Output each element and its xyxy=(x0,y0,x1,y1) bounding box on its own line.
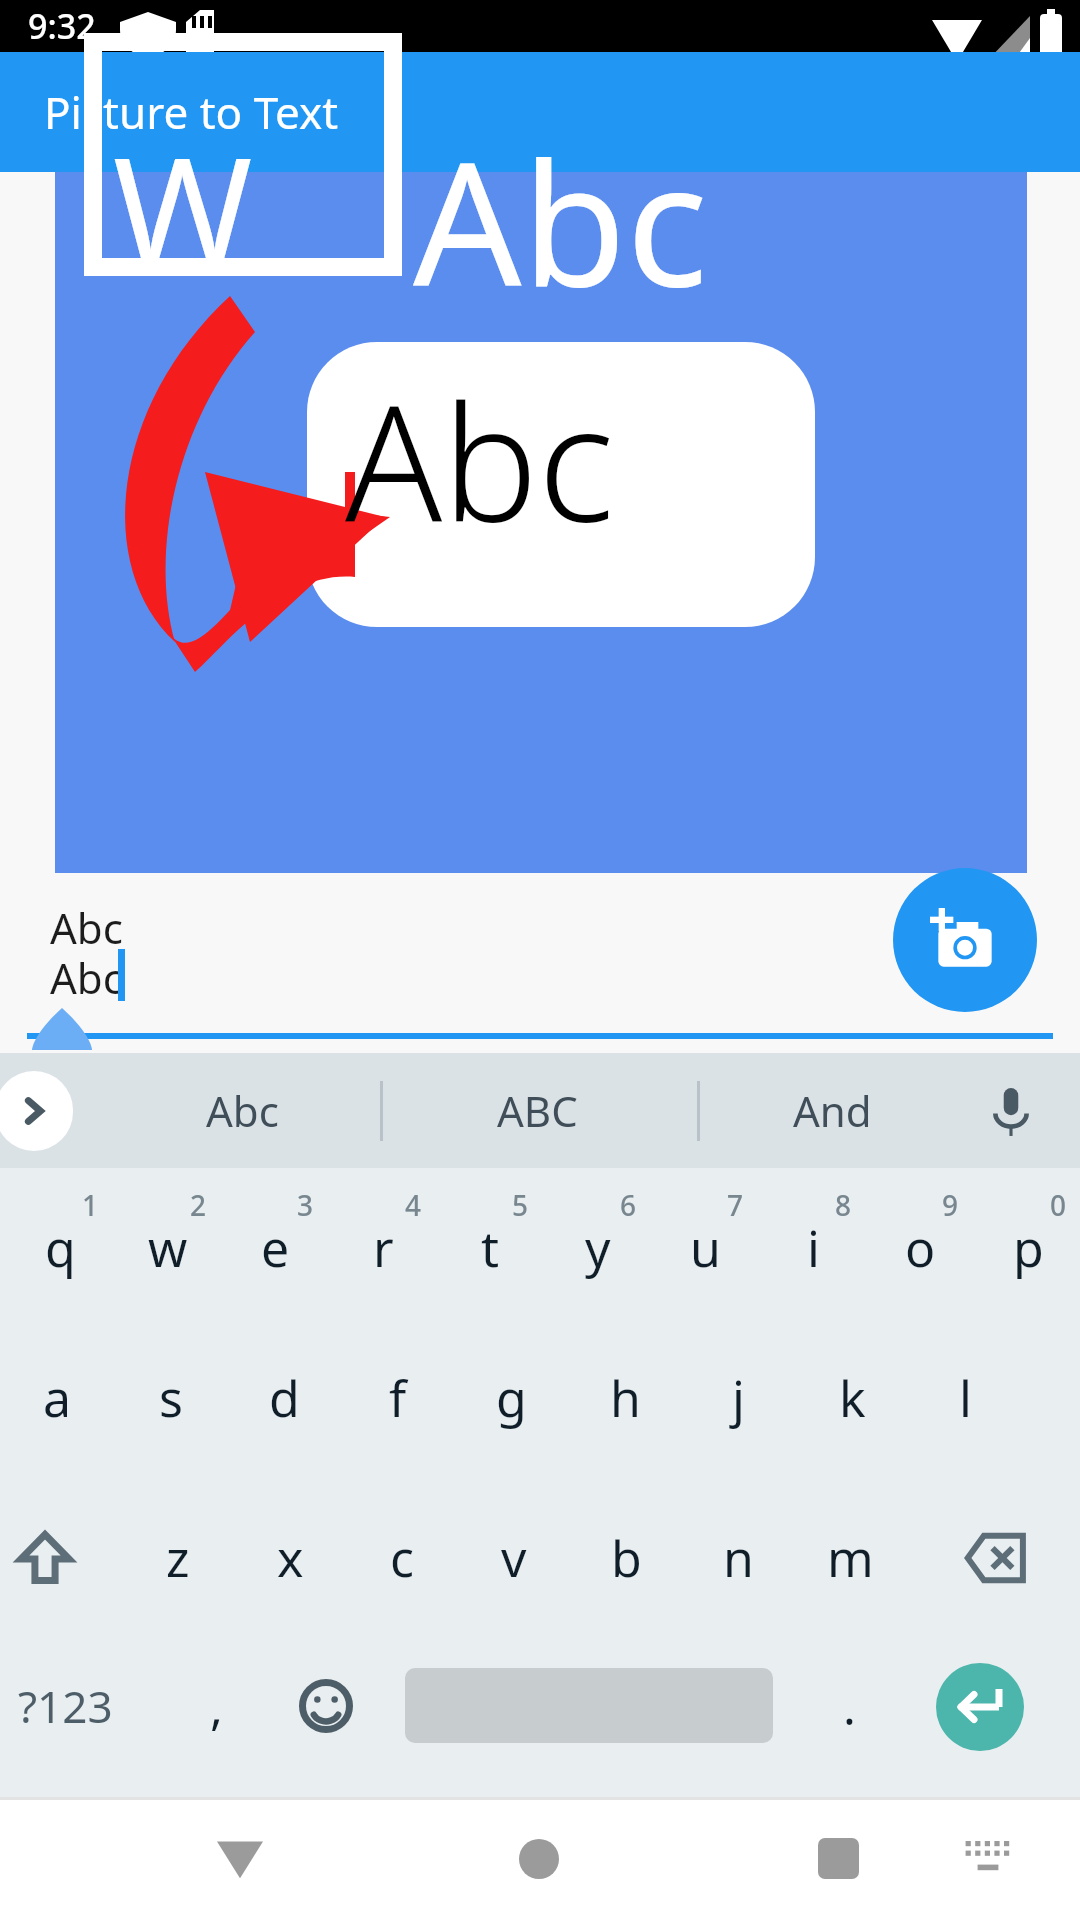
button[interactable]: Shift xyxy=(0,1498,90,1618)
button[interactable]: Recents xyxy=(778,1797,898,1920)
button[interactable]: Home xyxy=(479,1797,599,1920)
staticText: q xyxy=(45,1214,76,1282)
button[interactable]: o xyxy=(874,1202,966,1294)
button[interactable]: c xyxy=(356,1512,448,1604)
button[interactable]: u xyxy=(659,1202,751,1294)
staticText: Abc xyxy=(50,899,123,956)
button[interactable]: Enter xyxy=(936,1663,1024,1751)
staticText: 1 xyxy=(82,1186,99,1224)
staticText: n xyxy=(723,1524,754,1592)
button[interactable]: z xyxy=(132,1512,224,1604)
staticText: j xyxy=(732,1364,745,1432)
button[interactable]: y xyxy=(552,1202,644,1294)
staticText: Abc xyxy=(413,104,708,336)
button[interactable]: ?123 xyxy=(0,1646,130,1766)
staticText: l xyxy=(959,1364,972,1432)
button[interactable]: Voice input xyxy=(975,1075,1047,1147)
button[interactable]: Add a photo xyxy=(893,868,1037,1012)
button[interactable]: m xyxy=(804,1512,896,1604)
staticText: 0 xyxy=(1050,1186,1067,1224)
button[interactable]: More suggestions xyxy=(0,1071,73,1151)
staticText: e xyxy=(261,1214,290,1282)
staticText: o xyxy=(905,1214,936,1282)
button[interactable]: Abc xyxy=(55,172,1027,873)
button[interactable]: l xyxy=(919,1352,1011,1444)
button[interactable]: ABC xyxy=(385,1053,690,1168)
button[interactable]: , xyxy=(170,1660,262,1752)
staticText: v xyxy=(501,1524,527,1592)
staticText: z xyxy=(166,1524,190,1592)
button[interactable]: Abc xyxy=(110,1053,375,1168)
button[interactable]: w xyxy=(122,1202,214,1294)
staticText: t xyxy=(481,1214,500,1282)
button[interactable]: k xyxy=(806,1352,898,1444)
staticText: b xyxy=(611,1524,642,1592)
staticText: p xyxy=(1013,1214,1044,1282)
staticText: a xyxy=(43,1364,72,1432)
button[interactable]: p xyxy=(982,1202,1074,1294)
staticText: Abc xyxy=(50,949,123,1006)
button[interactable]: t xyxy=(444,1202,536,1294)
staticText: c xyxy=(390,1524,414,1592)
button[interactable]: Switch keyboard xyxy=(938,1797,1038,1920)
button[interactable]: b xyxy=(580,1512,672,1604)
staticText: s xyxy=(159,1364,183,1432)
button[interactable]: i xyxy=(767,1202,859,1294)
staticText: And xyxy=(793,1082,872,1139)
staticText: 5 xyxy=(512,1186,529,1224)
staticText: f xyxy=(389,1364,407,1432)
staticText: ?123 xyxy=(18,1676,113,1736)
staticText: h xyxy=(610,1364,641,1432)
staticText: d xyxy=(269,1364,300,1432)
button[interactable]: s xyxy=(125,1352,217,1444)
button[interactable]: f xyxy=(352,1352,444,1444)
staticText: . xyxy=(843,1674,856,1739)
staticText: 9:32 xyxy=(28,3,96,49)
staticText: Abc xyxy=(206,1082,279,1139)
button[interactable]: d xyxy=(238,1352,330,1444)
staticText: g xyxy=(496,1364,527,1432)
staticText: y xyxy=(585,1214,611,1282)
staticText: W xyxy=(113,106,253,310)
button[interactable]: r xyxy=(337,1202,429,1294)
staticText: ABC xyxy=(497,1082,578,1139)
button[interactable]: x xyxy=(244,1512,336,1604)
staticText: 7 xyxy=(727,1186,744,1224)
button[interactable]: . xyxy=(803,1660,895,1752)
button[interactable]: e xyxy=(229,1202,321,1294)
button[interactable]: v xyxy=(468,1512,560,1604)
staticText: u xyxy=(690,1214,721,1282)
staticText: 8 xyxy=(835,1186,852,1224)
button[interactable]: Emoji xyxy=(280,1646,372,1766)
button[interactable]: n xyxy=(692,1512,784,1604)
button[interactable]: Back xyxy=(180,1797,300,1920)
button[interactable]: And xyxy=(700,1053,965,1168)
button[interactable]: h xyxy=(579,1352,671,1444)
staticText: 6 xyxy=(620,1186,637,1224)
button[interactable]: g xyxy=(465,1352,557,1444)
staticText: Picture to Text xyxy=(44,82,339,142)
staticText: w xyxy=(148,1214,188,1282)
staticText: i xyxy=(807,1214,820,1282)
button[interactable]: q xyxy=(14,1202,106,1294)
staticText: Abc xyxy=(345,350,615,568)
staticText: 2 xyxy=(190,1186,207,1224)
staticText: m xyxy=(827,1524,874,1592)
staticText: 4 xyxy=(405,1186,422,1224)
button[interactable]: j xyxy=(692,1352,784,1444)
staticText: k xyxy=(839,1364,866,1432)
button[interactable]: Abc xyxy=(0,873,1080,1053)
button[interactable]: a xyxy=(11,1352,103,1444)
staticText: 9 xyxy=(942,1186,959,1224)
staticText: , xyxy=(210,1674,223,1739)
button[interactable]: Backspace xyxy=(945,1498,1045,1618)
staticText: 3 xyxy=(297,1186,314,1224)
staticText: r xyxy=(373,1214,394,1282)
staticText: x xyxy=(277,1524,304,1592)
